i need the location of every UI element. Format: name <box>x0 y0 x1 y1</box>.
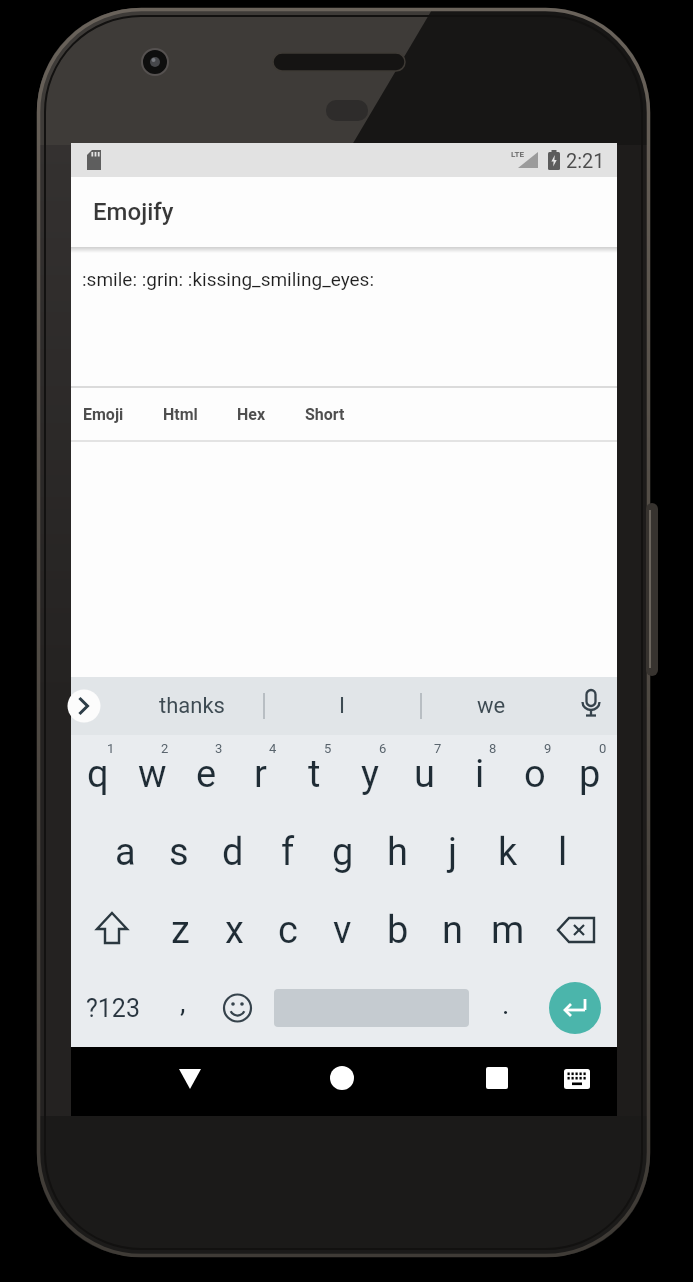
staticText: k <box>498 830 518 875</box>
staticText: j <box>448 830 458 875</box>
button[interactable]: s <box>152 813 206 891</box>
staticText: l <box>558 830 568 875</box>
staticText: 5 <box>324 741 332 756</box>
button[interactable]: q <box>71 735 125 813</box>
button[interactable]: , <box>155 969 210 1047</box>
button[interactable]: Emoji <box>77 391 130 438</box>
staticText: 4 <box>269 741 277 756</box>
staticText: 2:21 <box>566 149 605 172</box>
button[interactable]: r <box>233 735 287 813</box>
staticText: Html <box>163 405 198 424</box>
staticText: 1 <box>107 741 115 756</box>
button[interactable] <box>576 689 606 725</box>
staticText: I <box>339 693 345 719</box>
button[interactable] <box>533 969 617 1047</box>
staticText: w <box>138 752 167 797</box>
button[interactable]: p <box>562 735 617 813</box>
staticText: 7 <box>434 741 442 756</box>
staticText: Emoji <box>83 405 124 424</box>
button[interactable]: Hex <box>231 391 272 438</box>
button[interactable]: thanks <box>132 677 252 735</box>
button[interactable]: i <box>452 735 507 813</box>
staticText: m <box>491 908 525 953</box>
staticText: Emojify <box>93 198 174 226</box>
staticText: 3 <box>215 741 223 756</box>
button[interactable] <box>555 1059 599 1103</box>
button[interactable]: t <box>287 735 342 813</box>
button[interactable]: Html <box>157 391 204 438</box>
staticText: c <box>278 908 298 953</box>
staticText: o <box>524 752 546 797</box>
button[interactable]: u <box>397 735 452 813</box>
button[interactable] <box>535 891 617 969</box>
button[interactable]: d <box>206 813 260 891</box>
button[interactable] <box>210 969 265 1047</box>
staticText: d <box>222 830 244 875</box>
staticText: y <box>361 752 379 797</box>
staticText: we <box>477 693 506 719</box>
staticText: f <box>281 830 295 875</box>
button[interactable]: m <box>480 891 535 969</box>
staticText: n <box>442 908 463 953</box>
staticText: t <box>308 752 321 797</box>
staticText: 6 <box>379 741 387 756</box>
button[interactable]: h <box>370 813 425 891</box>
staticText: a <box>115 830 136 875</box>
button[interactable] <box>265 969 478 1047</box>
button[interactable]: j <box>425 813 480 891</box>
staticText: s <box>169 830 189 875</box>
button[interactable]: y <box>342 735 397 813</box>
button[interactable]: a <box>98 813 152 891</box>
button[interactable]: l <box>535 813 590 891</box>
staticText: . <box>502 988 510 1021</box>
button[interactable]: Short <box>299 391 351 438</box>
staticText: h <box>387 830 408 875</box>
staticText: b <box>387 908 409 953</box>
button[interactable]: g <box>315 813 370 891</box>
staticText: q <box>87 752 109 797</box>
button[interactable]: n <box>425 891 480 969</box>
staticText: Short <box>305 405 345 424</box>
staticText: 2 <box>161 741 169 756</box>
button[interactable]: e <box>179 735 233 813</box>
staticText: x <box>225 908 244 953</box>
button[interactable]: b <box>370 891 425 969</box>
button[interactable]: c <box>261 891 315 969</box>
button[interactable]: o <box>507 735 562 813</box>
staticText: ?123 <box>86 994 140 1023</box>
button[interactable]: f <box>260 813 315 891</box>
button[interactable]: w <box>125 735 179 813</box>
staticText: 8 <box>489 741 497 756</box>
staticText: p <box>579 752 601 797</box>
staticText: r <box>254 752 267 797</box>
staticText: :smile: :grin: :kissing_smiling_eyes: <box>82 268 375 290</box>
staticText: LTE <box>511 150 524 159</box>
button[interactable]: ?123 <box>71 969 155 1047</box>
staticText: z <box>171 908 190 953</box>
button[interactable] <box>168 1059 212 1103</box>
button[interactable] <box>71 891 153 969</box>
staticText: v <box>333 908 352 953</box>
button[interactable]: I <box>282 677 402 735</box>
button[interactable]: z <box>153 891 207 969</box>
button[interactable]: . <box>478 969 533 1047</box>
staticText: g <box>332 830 354 875</box>
staticText: e <box>196 752 217 797</box>
button[interactable] <box>320 1059 364 1103</box>
button[interactable] <box>475 1059 519 1103</box>
staticText: 0 <box>599 741 607 756</box>
staticText: Hex <box>237 405 266 424</box>
button[interactable]: v <box>315 891 370 969</box>
button[interactable]: x <box>207 891 261 969</box>
button[interactable] <box>69 691 101 721</box>
button[interactable]: we <box>431 677 551 735</box>
button[interactable]: k <box>480 813 535 891</box>
staticText: thanks <box>159 693 225 719</box>
staticText: i <box>475 752 485 797</box>
staticText: u <box>414 752 435 797</box>
staticText: 9 <box>544 741 552 756</box>
staticText: , <box>180 986 186 1019</box>
